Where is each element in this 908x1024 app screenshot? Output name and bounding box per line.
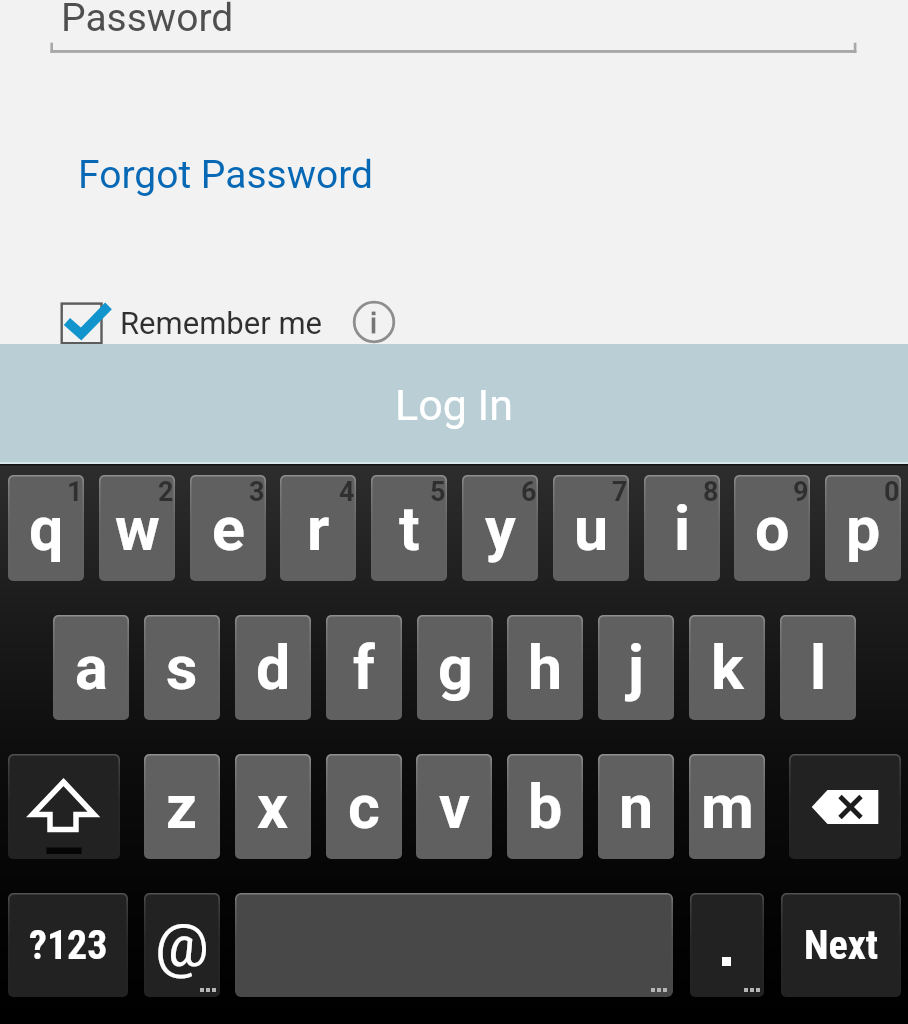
button[interactable]: n — [598, 754, 674, 859]
staticText: w — [115, 493, 160, 564]
button[interactable]: a — [53, 615, 129, 720]
staticText: g — [438, 632, 473, 703]
button[interactable]: Backspace — [789, 754, 901, 859]
staticText: 8 — [703, 476, 719, 508]
staticText: 2 — [158, 476, 174, 508]
button[interactable]: z — [144, 754, 220, 859]
button[interactable]: l — [780, 615, 856, 720]
staticText: p — [846, 493, 881, 564]
button[interactable]: Shift — [8, 754, 120, 859]
button[interactable]: Next — [781, 893, 901, 997]
button[interactable]: g — [417, 615, 493, 720]
staticText: j — [628, 632, 644, 703]
staticText: 1 — [67, 476, 83, 508]
button[interactable]: y — [462, 475, 538, 581]
button[interactable]: w — [99, 475, 175, 581]
staticText: 4 — [339, 476, 355, 508]
button[interactable]: s — [144, 615, 220, 720]
button[interactable]: v — [416, 754, 492, 859]
staticText: Log In — [395, 380, 513, 430]
button[interactable]: p — [825, 475, 901, 581]
staticText: Password — [61, 0, 234, 41]
staticText: Forgot Password — [78, 152, 374, 198]
button[interactable]: f — [326, 615, 402, 720]
button[interactable]: h — [507, 615, 583, 720]
staticText: n — [619, 771, 654, 842]
button[interactable]: Period — [690, 893, 764, 997]
staticText: x — [257, 771, 289, 842]
staticText: t — [399, 493, 420, 564]
staticText: @ — [155, 910, 209, 980]
button[interactable]: q — [8, 475, 84, 581]
staticText: 3 — [249, 476, 265, 508]
staticText: f — [353, 632, 375, 703]
button[interactable]: u — [553, 475, 629, 581]
button[interactable]: x — [235, 754, 311, 859]
button[interactable]: Forgot Password — [78, 152, 374, 198]
button[interactable]: ?123 — [8, 893, 128, 997]
button[interactable]: t — [371, 475, 447, 581]
button[interactable]: m — [689, 754, 765, 859]
staticText: v — [439, 771, 470, 842]
button[interactable]: @ — [144, 893, 220, 997]
staticText: r — [307, 493, 330, 564]
staticText: a — [75, 632, 108, 703]
button[interactable]: Remember me — [120, 305, 323, 341]
staticText: Next — [804, 922, 878, 969]
staticText: e — [212, 493, 245, 564]
staticText: h — [528, 632, 563, 703]
staticText: b — [528, 771, 563, 842]
staticText: 9 — [793, 476, 809, 508]
button[interactable]: b — [507, 754, 583, 859]
button[interactable]: r — [280, 475, 356, 581]
staticText: 5 — [430, 476, 446, 508]
staticText: d — [256, 632, 291, 703]
staticText: i — [674, 493, 691, 564]
staticText: m — [701, 771, 754, 842]
staticText: q — [29, 493, 64, 564]
staticText: 7 — [612, 476, 628, 508]
button[interactable]: Log In — [0, 344, 908, 464]
staticText: s — [166, 632, 198, 703]
staticText: u — [574, 493, 609, 564]
button[interactable]: c — [326, 754, 402, 859]
staticText: o — [755, 493, 790, 564]
staticText: l — [810, 632, 827, 703]
button[interactable]: k — [689, 615, 765, 720]
staticText: Remember me — [120, 305, 323, 341]
button[interactable]: e — [190, 475, 266, 581]
button[interactable]: o — [734, 475, 810, 581]
button[interactable]: j — [598, 615, 674, 720]
button[interactable]: Info — [352, 300, 397, 345]
staticText: z — [166, 771, 198, 842]
staticText: c — [348, 771, 380, 842]
staticText: 0 — [884, 476, 900, 508]
staticText: ?123 — [29, 922, 108, 969]
button[interactable]: Remember me checkbox — [54, 296, 114, 356]
staticText: y — [485, 493, 516, 564]
button[interactable]: d — [235, 615, 311, 720]
staticText: 6 — [521, 476, 537, 508]
staticText: k — [711, 632, 744, 703]
button[interactable]: i — [644, 475, 720, 581]
button[interactable]: Space — [235, 893, 673, 997]
